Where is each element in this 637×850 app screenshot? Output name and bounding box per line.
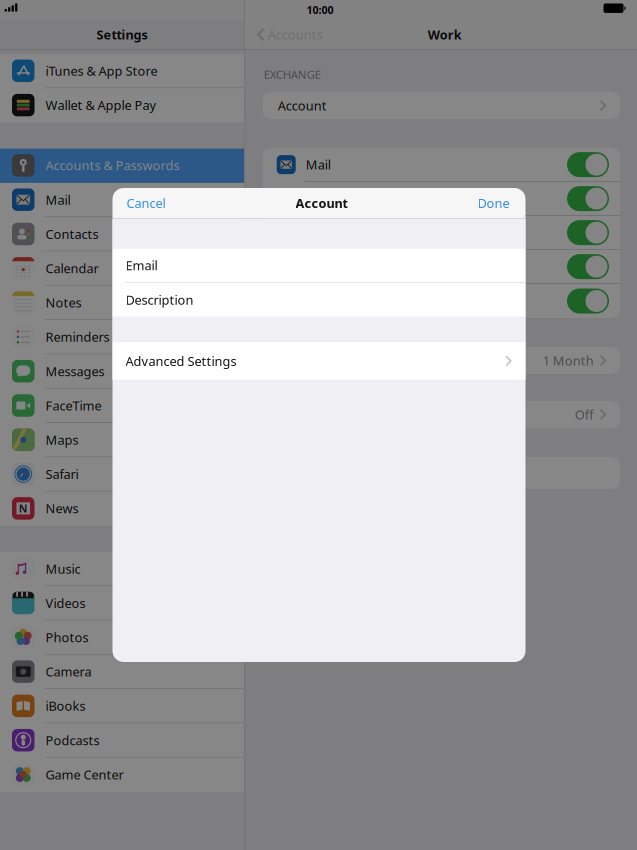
staticText: Advanced Settings xyxy=(125,352,236,370)
staticText: Description xyxy=(125,291,193,308)
button[interactable]: N xyxy=(0,492,244,526)
button[interactable]: Contacts xyxy=(263,182,620,216)
staticText: Music xyxy=(45,560,80,577)
staticText: Camera xyxy=(45,663,91,680)
staticText: Contacts xyxy=(45,225,98,243)
button[interactable]: Delete Account xyxy=(263,457,620,489)
button[interactable]: iTunes & App Store xyxy=(0,54,244,88)
staticText: Accounts xyxy=(268,26,323,43)
button[interactable]: Reminders xyxy=(0,320,244,354)
staticText: Contacts xyxy=(306,190,359,207)
button[interactable]: Description xyxy=(112,283,525,317)
button[interactable]: Accounts & Passwords xyxy=(0,149,244,183)
staticText: Podcasts xyxy=(45,731,99,749)
button[interactable]: iBooks xyxy=(0,689,244,723)
staticText: Reminders xyxy=(45,328,109,346)
staticText: Email xyxy=(125,257,157,274)
staticText: Maps xyxy=(45,431,78,448)
button[interactable]: Wallet & Apple Pay xyxy=(0,88,244,123)
button[interactable]: Mail xyxy=(0,183,244,217)
staticText: Notes xyxy=(45,294,81,311)
staticText: Wallet & Apple Pay xyxy=(45,96,156,114)
staticText: Work xyxy=(428,26,462,43)
staticText: Account xyxy=(278,97,327,114)
button[interactable]: Done xyxy=(467,187,525,218)
button[interactable]: Calendars xyxy=(263,216,620,250)
button[interactable]: Email xyxy=(112,249,525,283)
staticText: FaceTime xyxy=(45,397,101,414)
button[interactable]: Calendar xyxy=(0,251,244,286)
staticText: Safari xyxy=(45,465,78,483)
button[interactable]: Camera xyxy=(0,655,244,689)
staticText: N xyxy=(19,501,28,516)
staticText: Settings xyxy=(96,26,147,43)
button[interactable]: Cancel xyxy=(112,187,175,218)
button[interactable]: Messages xyxy=(0,354,244,389)
button[interactable]: Mail xyxy=(263,148,620,182)
button[interactable]: Safari xyxy=(0,457,244,492)
staticText: News xyxy=(45,500,78,517)
button[interactable]: Music xyxy=(0,552,244,586)
staticText: iTunes & App Store xyxy=(45,62,157,79)
staticText: EXCHANGE xyxy=(264,66,321,82)
staticText: Mail xyxy=(306,156,331,173)
staticText: Off xyxy=(575,406,594,423)
staticText: Game Center xyxy=(45,766,123,783)
button[interactable]: Videos xyxy=(0,586,244,620)
button[interactable]: Account xyxy=(263,92,620,119)
button[interactable]: Contacts xyxy=(0,217,244,251)
staticText: Account xyxy=(295,194,347,212)
button[interactable]: Notes xyxy=(263,284,620,318)
staticText: 1 Month xyxy=(543,352,594,369)
button[interactable]: Photos xyxy=(0,620,244,655)
staticText: Photos xyxy=(45,629,88,646)
staticText: iBooks xyxy=(45,697,85,715)
button[interactable]: Accounts xyxy=(245,20,331,49)
staticText: Accounts & Passwords xyxy=(45,157,179,174)
staticText: Messages xyxy=(45,362,104,380)
button[interactable]: FaceTime xyxy=(0,389,244,423)
button[interactable]: Mail Days to Sync xyxy=(263,347,620,374)
staticText: 10:00 xyxy=(306,3,333,17)
staticText: Mail xyxy=(45,191,70,208)
button[interactable]: Notes xyxy=(0,286,244,320)
button[interactable]: Advanced Settings xyxy=(112,342,525,380)
staticText: Cancel xyxy=(126,194,165,212)
button[interactable]: Reminders xyxy=(263,250,620,284)
button[interactable]: Game Center xyxy=(0,758,244,792)
staticText: Done xyxy=(477,194,509,212)
staticText: Videos xyxy=(45,594,85,612)
staticText: Calendar xyxy=(45,260,98,277)
button[interactable]: Automatic Reply xyxy=(263,401,620,428)
button[interactable]: Maps xyxy=(0,423,244,457)
button[interactable]: Podcasts xyxy=(0,723,244,758)
